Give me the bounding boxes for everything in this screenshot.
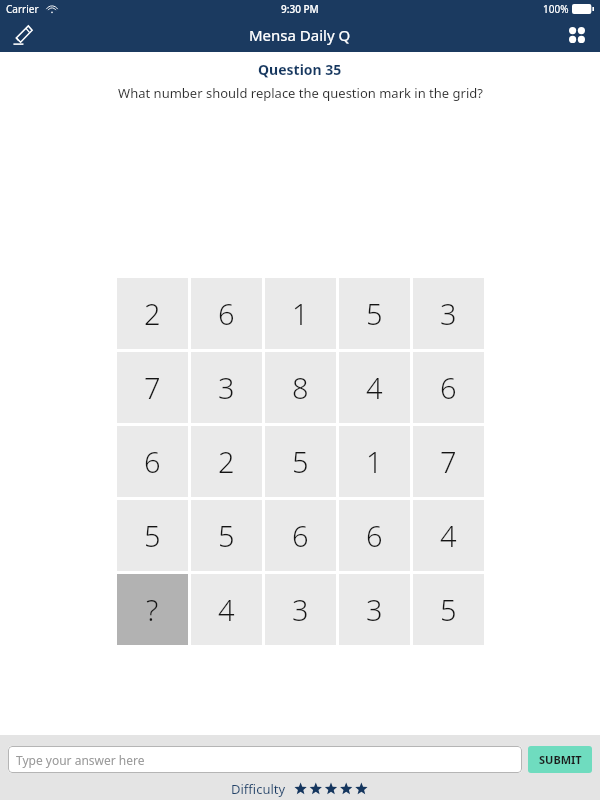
staticText: Mensa Daily Q (249, 25, 351, 45)
button[interactable]: 6 (191, 278, 262, 349)
staticText: 1 (366, 442, 383, 481)
button[interactable]: 5 (191, 500, 262, 571)
button[interactable]: 3 (339, 574, 410, 645)
button[interactable]: 5 (413, 574, 484, 645)
button[interactable]: 4 (191, 574, 262, 645)
staticText: 5 (292, 442, 309, 481)
staticText: 8 (292, 368, 309, 407)
staticText: 5 (440, 590, 457, 629)
button[interactable]: 6 (117, 426, 188, 497)
button[interactable]: 6 (265, 500, 336, 571)
staticText: 7 (440, 442, 457, 481)
staticText: 100% (543, 2, 569, 16)
staticText: SUBMIT (539, 752, 582, 767)
button[interactable]: 1 (339, 426, 410, 497)
button[interactable]: 4 (413, 500, 484, 571)
button[interactable]: 7 (413, 426, 484, 497)
staticText: 5 (218, 516, 235, 555)
staticText: 3 (440, 294, 457, 333)
staticText: Question 35 (258, 60, 342, 79)
staticText: 3 (292, 590, 309, 629)
staticText: 6 (144, 442, 161, 481)
button[interactable]: 6 (339, 500, 410, 571)
staticText: 4 (440, 516, 457, 555)
staticText: 6 (292, 516, 309, 555)
button[interactable]: 1 (265, 278, 336, 349)
button[interactable]: 3 (265, 574, 336, 645)
staticText: 6 (440, 368, 457, 407)
button[interactable]: 6 (413, 352, 484, 423)
staticText: 5 (366, 294, 383, 333)
button[interactable]: Type your answer here (8, 746, 522, 773)
button[interactable]: 7 (117, 352, 188, 423)
staticText: What number should replace the question … (118, 84, 483, 102)
button[interactable]: 4 (339, 352, 410, 423)
staticText: ? (146, 590, 159, 629)
staticText: 2 (144, 294, 161, 333)
button[interactable]: Menu (562, 20, 592, 50)
button[interactable]: 3 (413, 278, 484, 349)
staticText: 1 (292, 294, 309, 333)
button[interactable]: 8 (265, 352, 336, 423)
staticText: Difficulty (231, 780, 286, 798)
staticText: 3 (218, 368, 235, 407)
button[interactable]: 5 (265, 426, 336, 497)
button[interactable]: ? (117, 574, 188, 645)
button[interactable]: 3 (191, 352, 262, 423)
staticText: 6 (218, 294, 235, 333)
staticText: 4 (366, 368, 383, 407)
button[interactable]: Draw (8, 20, 38, 50)
staticText: 2 (218, 442, 235, 481)
staticText: 5 (144, 516, 161, 555)
staticText: Type your answer here (16, 752, 145, 768)
staticText: 9:30 PM (281, 2, 319, 16)
button[interactable]: 2 (117, 278, 188, 349)
staticText: 6 (366, 516, 383, 555)
staticText: 4 (218, 590, 235, 629)
button[interactable]: 2 (191, 426, 262, 497)
staticText: Carrier (6, 2, 39, 16)
button[interactable]: 5 (339, 278, 410, 349)
staticText: 7 (144, 368, 161, 407)
staticText: 3 (366, 590, 383, 629)
button[interactable]: SUBMIT (528, 746, 592, 773)
button[interactable]: 5 (117, 500, 188, 571)
